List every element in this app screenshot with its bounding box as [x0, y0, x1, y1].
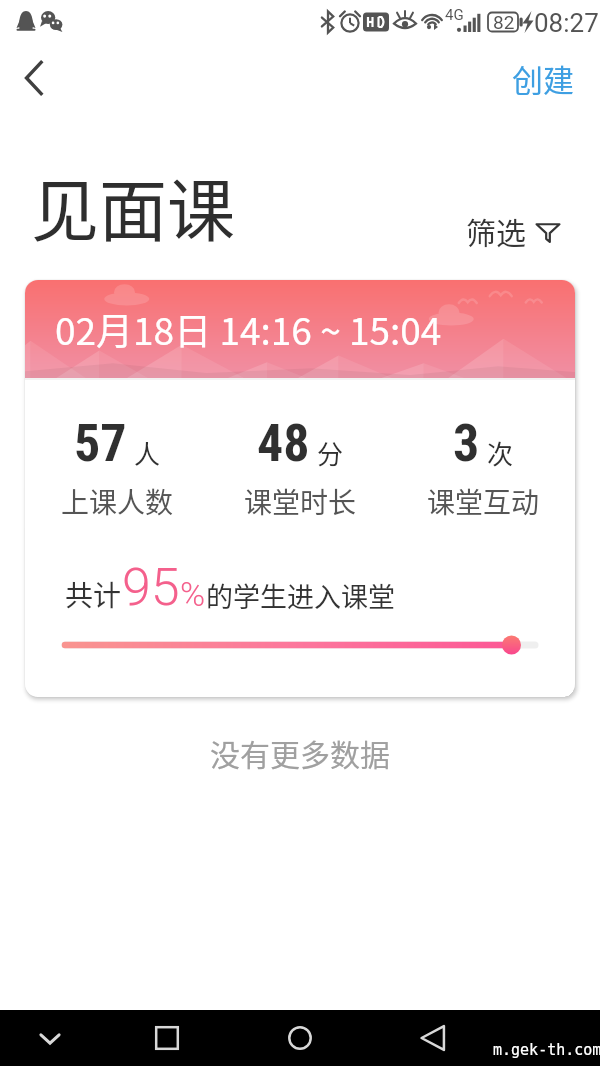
- staticText: 次: [487, 434, 514, 472]
- button[interactable]: Back: [407, 1012, 459, 1064]
- staticText: 分: [317, 434, 344, 472]
- staticText: 02月18日 14:16 ~ 15:04: [55, 302, 442, 356]
- button[interactable]: 创建: [500, 48, 586, 108]
- staticText: 的学生进入课堂: [206, 576, 395, 615]
- button[interactable]: 02月18日 14:16 ~ 15:04: [25, 280, 575, 697]
- staticText: 上课人数: [61, 481, 174, 522]
- staticText: 课堂时长: [244, 481, 357, 522]
- staticText: 筛选: [466, 209, 526, 252]
- button[interactable]: Home: [274, 1012, 326, 1064]
- staticText: 95: [122, 557, 180, 618]
- button[interactable]: 筛选: [458, 203, 569, 258]
- staticText: m.gek-th.com: [493, 1041, 600, 1058]
- staticText: 4G: [445, 6, 464, 24]
- button[interactable]: Hide navigation bar: [24, 1012, 76, 1064]
- staticText: 创建: [512, 56, 574, 100]
- staticText: 3: [453, 413, 480, 474]
- staticText: 57: [74, 413, 127, 474]
- staticText: 48: [257, 413, 310, 474]
- staticText: 82: [493, 11, 515, 33]
- button[interactable]: Recent apps: [141, 1012, 193, 1064]
- staticText: 共计: [65, 574, 122, 615]
- staticText: 没有更多数据: [0, 731, 600, 774]
- staticText: 课堂互动: [427, 481, 540, 522]
- staticText: 见面课: [31, 157, 236, 249]
- staticText: %: [180, 574, 206, 614]
- staticText: 人: [134, 434, 161, 472]
- staticText: 08:27: [534, 8, 599, 38]
- button[interactable]: Back: [8, 51, 62, 105]
